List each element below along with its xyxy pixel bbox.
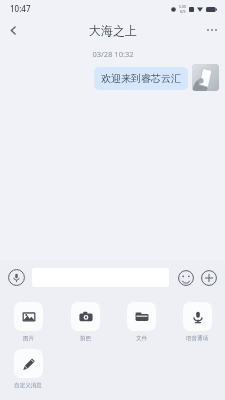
staticText: 图片 <box>23 335 34 342</box>
staticText: K/S <box>180 9 186 14</box>
button[interactable]: 欢迎来到睿芯云汇 <box>94 67 188 90</box>
button[interactable]: More options <box>199 17 225 43</box>
button[interactable]: Back <box>0 17 26 43</box>
staticText: 5.00 <box>179 4 186 9</box>
button[interactable]: Voice input <box>7 268 26 287</box>
staticText: 自定义消息 <box>14 382 42 389</box>
staticText: 10:47 <box>10 3 31 14</box>
button[interactable]: 自定义消息 <box>0 349 56 389</box>
button[interactable]: 文件 <box>113 302 169 342</box>
button[interactable]: 拍照 <box>57 302 113 342</box>
staticText: 03/28 10:32 <box>92 49 134 59</box>
button[interactable]: More attachments <box>199 268 218 287</box>
staticText: 拍照 <box>80 335 91 342</box>
staticText: 欢迎来到睿芯云汇 <box>101 72 181 85</box>
button[interactable]: 语音通话 <box>169 302 225 342</box>
staticText: 大海之上 <box>89 23 137 38</box>
button[interactable]: Avatar <box>192 64 219 91</box>
staticText: 语音通话 <box>186 335 208 342</box>
button[interactable]: 图片 <box>0 302 57 342</box>
button[interactable]: Emoji <box>176 268 195 287</box>
staticText: 文件 <box>136 335 147 342</box>
